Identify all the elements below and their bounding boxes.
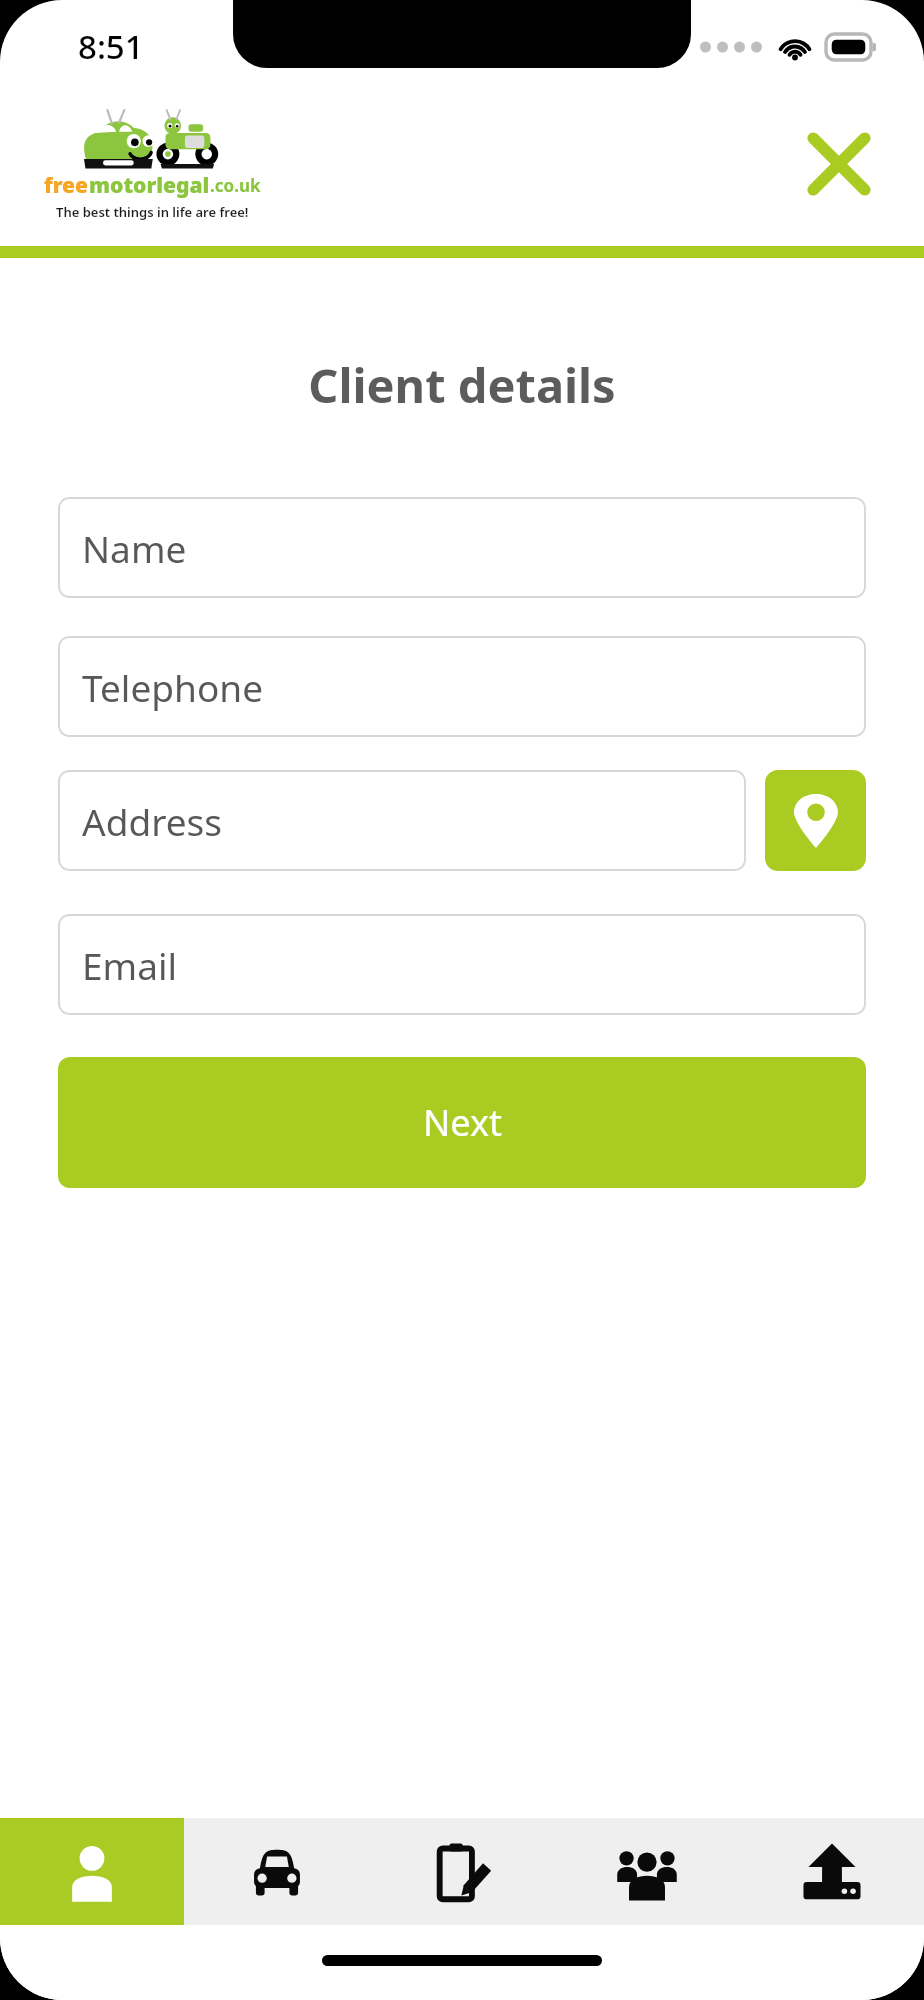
staticText: The best things in life are free! xyxy=(56,203,249,221)
button[interactable]: Tab xyxy=(369,1818,554,1925)
button[interactable]: Tab xyxy=(554,1818,739,1925)
button[interactable]: Close xyxy=(796,121,882,207)
button[interactable]: Next xyxy=(58,1057,866,1188)
button[interactable]: Name xyxy=(58,497,866,598)
staticText: Client details xyxy=(0,353,924,417)
button[interactable]: Email xyxy=(58,914,866,1015)
staticText: Address xyxy=(82,796,223,846)
staticText: Telephone xyxy=(82,662,264,712)
button[interactable]: Client xyxy=(0,1818,184,1925)
button[interactable]: Use my location xyxy=(765,770,866,871)
staticText: Email xyxy=(82,940,178,990)
staticText: motorlegal xyxy=(89,171,210,200)
staticText: .co.uk xyxy=(210,174,261,197)
button[interactable]: Tab xyxy=(184,1818,369,1925)
button[interactable]: Tab xyxy=(739,1818,924,1925)
staticText: 8:51 xyxy=(78,24,144,69)
staticText: free xyxy=(44,171,89,200)
staticText: Next xyxy=(423,1098,502,1147)
button[interactable]: Address xyxy=(58,770,746,871)
staticText: Name xyxy=(82,523,187,573)
button[interactable]: Telephone xyxy=(58,636,866,737)
